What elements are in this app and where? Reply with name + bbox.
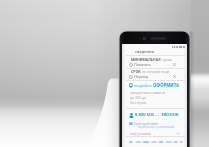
other: Expand (175, 131, 181, 136)
staticText: без справ (130, 100, 147, 105)
staticText: подробно (134, 83, 152, 88)
button[interactable]: ещё условия (122, 131, 187, 136)
button[interactable]: Период (122, 74, 187, 79)
staticText: сумма (162, 57, 173, 61)
button[interactable]: Details (122, 119, 187, 128)
staticText: ограничен условиями (138, 124, 175, 129)
staticText: ОФОРМИТЬ ЗАЯВКУ (153, 82, 187, 88)
button[interactable]: сведения (122, 49, 187, 55)
staticText: процентная ставка от (130, 90, 166, 95)
button[interactable]: Call (122, 82, 187, 88)
staticText: СРОК (131, 69, 141, 73)
staticText: до 365 дн (130, 95, 146, 100)
staticText: ЗВОНОК (161, 112, 179, 118)
staticText: на который выда (142, 69, 170, 73)
staticText: 8 800 500 (135, 112, 154, 118)
staticText: Срок действия (134, 121, 159, 126)
staticText: — (155, 112, 160, 118)
staticText: МИНИМАЛЬНАЯ (131, 57, 161, 61)
staticText: ещё условия (130, 131, 151, 136)
other: Clear (172, 74, 177, 79)
other: Call (129, 83, 133, 88)
staticText: сведения (135, 49, 155, 55)
button[interactable]: Показать (122, 62, 187, 67)
staticText: Показать (134, 62, 151, 67)
staticText: Период (134, 74, 149, 79)
other: Clear (172, 62, 177, 67)
button[interactable]: Account (122, 112, 187, 118)
other: Account (129, 113, 134, 118)
other: Details (129, 122, 133, 126)
